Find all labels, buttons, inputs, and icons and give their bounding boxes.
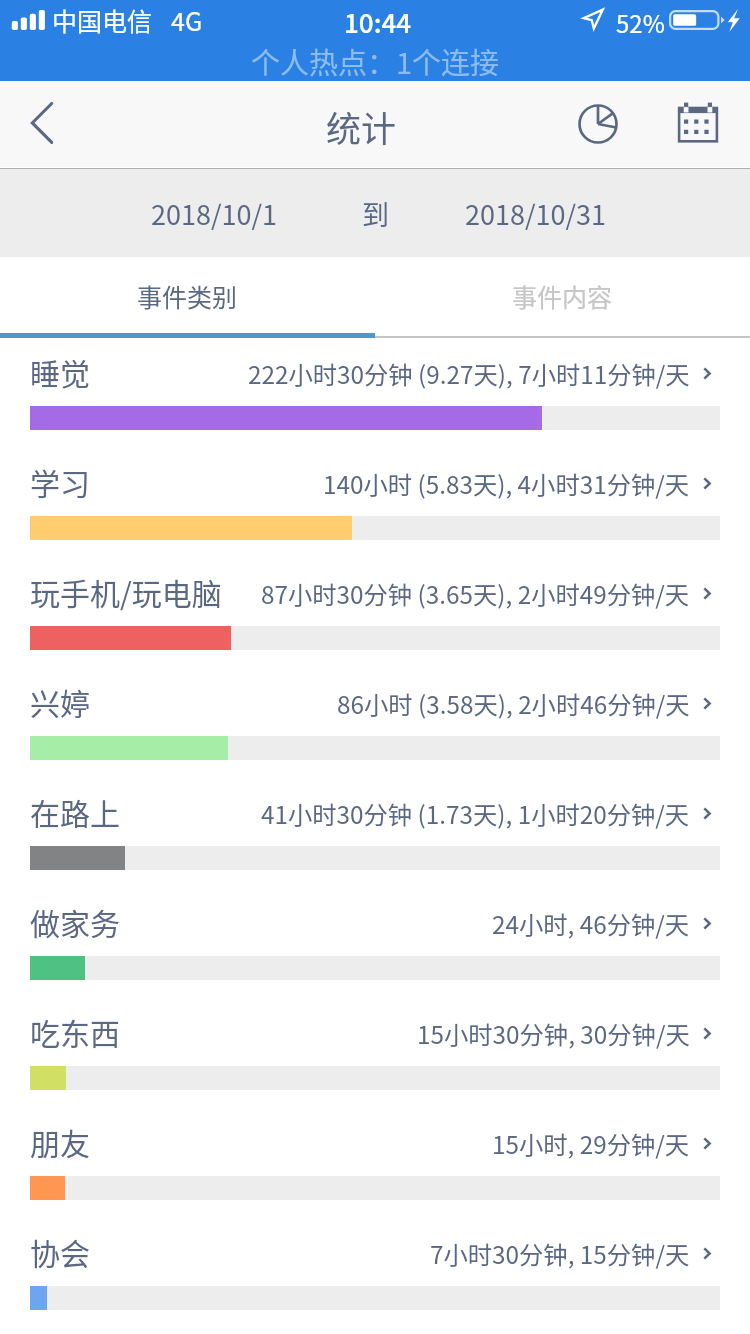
button[interactable]: 事件内容 (375, 257, 750, 338)
button[interactable]: 吃东西 (0, 998, 750, 1108)
staticText: 86小时 (3.58天), 2小时46分钟/天 (337, 686, 690, 721)
button[interactable]: 兴婷 (0, 668, 750, 778)
button[interactable]: Calendar (658, 81, 738, 169)
staticText: 朋友 (30, 1120, 90, 1163)
button[interactable]: 事件类别 (0, 257, 375, 338)
staticText: 在路上 (30, 790, 120, 833)
staticText: 87小时30分钟 (3.65天), 2小时49分钟/天 (261, 576, 690, 611)
staticText: 4G (171, 2, 203, 38)
button[interactable]: 在路上 (0, 778, 750, 888)
staticText: 事件类别 (137, 278, 238, 314)
staticText: 140小时 (5.83天), 4小时31分钟/天 (323, 466, 690, 501)
staticText: 兴婷 (30, 680, 90, 723)
staticText: 52% (616, 5, 665, 40)
staticText: 222小时30分钟 (9.27天), 7小时11分钟/天 (248, 356, 690, 391)
button[interactable]: 2018/10/1 (120, 169, 308, 257)
staticText: 事件内容 (512, 278, 613, 314)
staticText: 学习 (30, 460, 90, 503)
staticText: 到 (362, 194, 389, 233)
staticText: 中国电信 (52, 2, 153, 38)
button[interactable]: 协会 (0, 1218, 750, 1328)
staticText: 2018/10/1 (151, 194, 278, 233)
staticText: 15小时30分钟, 30分钟/天 (417, 1016, 690, 1051)
staticText: 玩手机/玩电脑 (30, 570, 222, 613)
staticText: 个人热点：1个连接 (251, 40, 500, 82)
staticText: 24小时, 46分钟/天 (492, 906, 690, 941)
staticText: 10:44 (344, 3, 412, 41)
button[interactable]: 玩手机/玩电脑 (0, 558, 750, 668)
button[interactable]: Back (0, 81, 84, 169)
staticText: 睡觉 (30, 350, 90, 393)
staticText: 协会 (30, 1230, 90, 1273)
button[interactable]: 朋友 (0, 1108, 750, 1218)
button[interactable]: 2018/10/31 (442, 169, 630, 257)
staticText: 15小时, 29分钟/天 (492, 1126, 690, 1161)
button[interactable]: 做家务 (0, 888, 750, 998)
button[interactable]: 睡觉 (0, 338, 750, 448)
staticText: 吃东西 (30, 1010, 120, 1053)
staticText: 7小时30分钟, 15分钟/天 (430, 1236, 690, 1271)
staticText: 统计 (326, 101, 397, 152)
staticText: 2018/10/31 (465, 194, 607, 233)
staticText: 41小时30分钟 (1.73天), 1小时20分钟/天 (261, 796, 690, 831)
button[interactable]: Pie chart (556, 81, 640, 169)
staticText: 做家务 (30, 900, 120, 943)
button[interactable]: 学习 (0, 448, 750, 558)
